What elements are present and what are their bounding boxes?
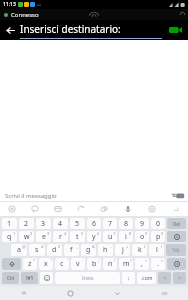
staticText: a (17, 245, 21, 255)
button[interactable]: e (36, 231, 51, 242)
staticText: b (92, 259, 97, 269)
staticText: s (35, 245, 39, 255)
button[interactable]: Emoji (92, 202, 116, 216)
button[interactable]: s (29, 244, 45, 256)
staticText: w (24, 232, 30, 242)
button[interactable]: 3 (36, 218, 51, 229)
button[interactable]: p (151, 231, 165, 242)
button[interactable]: More (164, 202, 188, 216)
button[interactable] (2, 258, 21, 270)
button[interactable]: 5 (70, 218, 85, 229)
button[interactable] (40, 272, 53, 284)
button[interactable]: ; (122, 272, 135, 284)
button[interactable]: Settings (140, 202, 164, 216)
staticText: Connesso (11, 11, 39, 19)
staticText: e (42, 232, 46, 242)
button[interactable]: . (151, 258, 165, 270)
staticText: Inserisci destinatario: (20, 22, 121, 36)
staticText: 2 (30, 231, 33, 236)
staticText: 7 (108, 219, 113, 229)
staticText: y (92, 232, 96, 242)
staticText: ; (98, 258, 100, 263)
staticText: ? (130, 258, 132, 263)
button[interactable]: 0 (151, 218, 165, 229)
button[interactable]: 6 (87, 218, 101, 229)
button[interactable]: Back (94, 286, 141, 300)
staticText: q (7, 232, 12, 242)
staticText: @ (22, 244, 26, 249)
button[interactable]: v (71, 258, 85, 270)
staticText: 5 (81, 231, 84, 236)
staticText: 5 (75, 219, 80, 229)
staticText: o (140, 232, 145, 242)
button[interactable]: q (2, 231, 17, 242)
button[interactable]: 9 (135, 218, 149, 229)
button[interactable]: 7 (103, 218, 117, 229)
button[interactable]: Tab (166, 244, 186, 256)
button[interactable]: l (149, 244, 164, 256)
button[interactable]: > (173, 272, 186, 284)
button[interactable]: Recents (0, 286, 47, 300)
button[interactable]: j (115, 244, 130, 256)
staticText: 4 (64, 231, 67, 236)
button[interactable]: Gallery (46, 202, 69, 216)
staticText: 3 (41, 219, 46, 229)
staticText: m (123, 259, 130, 269)
staticText: ) (161, 244, 163, 249)
button[interactable]: f (64, 244, 79, 256)
button[interactable]: Switch keyboard (141, 286, 188, 300)
staticText: 6 (97, 231, 100, 236)
button[interactable]: o (135, 231, 149, 242)
staticText: ' (67, 258, 68, 263)
button[interactable]: Invio (55, 272, 120, 284)
button[interactable]: 4 (53, 218, 68, 229)
button[interactable]: m (119, 258, 133, 270)
button[interactable]: a (11, 244, 27, 256)
button[interactable]: , (135, 258, 149, 270)
button[interactable]: Ctrl (2, 272, 19, 284)
button[interactable]: Home (47, 286, 94, 300)
button[interactable]: i (119, 231, 133, 242)
button[interactable]: d (47, 244, 62, 256)
button[interactable]: c (55, 258, 69, 270)
button[interactable]: g (81, 244, 96, 256)
button[interactable]: 8 (119, 218, 133, 229)
button[interactable]: .com (137, 272, 156, 284)
staticText: 8 (129, 231, 132, 236)
button[interactable]: r (53, 231, 68, 242)
staticText: h (103, 245, 108, 255)
button[interactable]: Attach (0, 202, 23, 216)
staticText: Ctrl (7, 275, 15, 281)
staticText: # (41, 244, 44, 249)
button[interactable]: z (23, 258, 37, 270)
staticText: < (145, 258, 148, 263)
button[interactable]: h (98, 244, 113, 256)
staticText: Del (173, 221, 180, 227)
button[interactable]: Video call (162, 20, 188, 40)
staticText: $ (58, 244, 61, 249)
button[interactable]: x (39, 258, 53, 270)
button[interactable]: 2 (19, 218, 34, 229)
button[interactable]: Del (167, 218, 186, 229)
button[interactable]: Voice (116, 202, 140, 216)
button[interactable] (167, 231, 186, 242)
button[interactable]: b (87, 258, 101, 270)
button[interactable]: Sticker (23, 202, 46, 216)
staticText: n (108, 259, 113, 269)
button[interactable]: w (19, 231, 34, 242)
button[interactable] (167, 258, 186, 270)
staticText: ! (114, 258, 116, 263)
staticText: 11:13 (3, 1, 16, 8)
button[interactable]: Scrivi il messaggio (0, 189, 188, 202)
button[interactable]: t (70, 231, 85, 242)
button[interactable]: n (103, 258, 117, 270)
button[interactable]: < (158, 272, 171, 284)
button[interactable]: u (103, 231, 117, 242)
button[interactable]: Gif (69, 202, 92, 216)
staticText: Scrivi il messaggio (5, 192, 57, 200)
button[interactable]: !#1 (21, 272, 38, 284)
button[interactable]: k (132, 244, 147, 256)
button[interactable]: Back (0, 20, 20, 40)
button[interactable]: y (87, 231, 101, 242)
button[interactable]: 1 (2, 218, 17, 229)
